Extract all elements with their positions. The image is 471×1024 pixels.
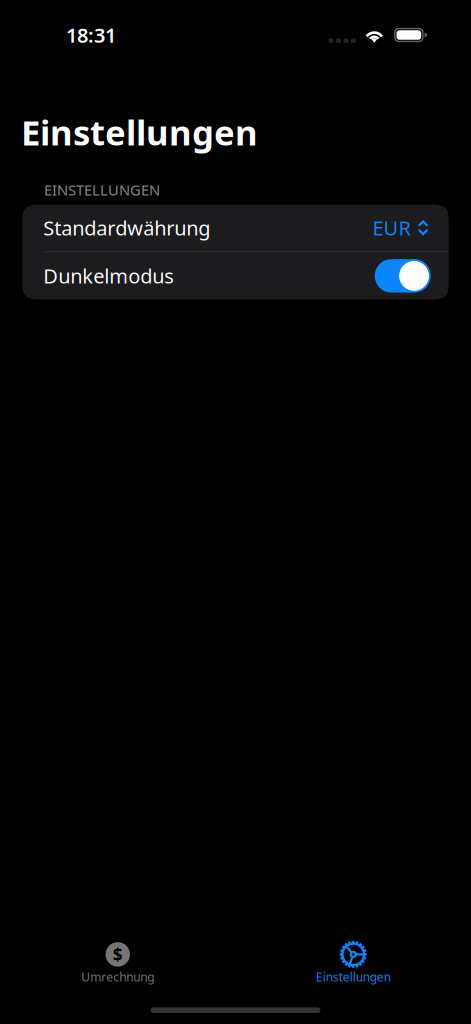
staticText: Einstellungen (316, 969, 391, 985)
staticText: Standardwährung (43, 214, 210, 241)
staticText: EUR (373, 214, 411, 241)
button[interactable]: Standardwährung (22, 204, 449, 251)
staticText: Einstellungen (21, 109, 258, 155)
button[interactable]: $ (0, 932, 235, 988)
staticText: Dunkelmodus (43, 263, 174, 289)
staticText: $ (113, 943, 123, 966)
staticText: 18:31 (66, 22, 116, 48)
staticText: Umrechnung (81, 969, 154, 985)
staticText: EINSTELLUNGEN (44, 180, 160, 199)
button[interactable]: Einstellungen (235, 932, 471, 988)
button[interactable]: Dunkelmodus (22, 252, 449, 299)
